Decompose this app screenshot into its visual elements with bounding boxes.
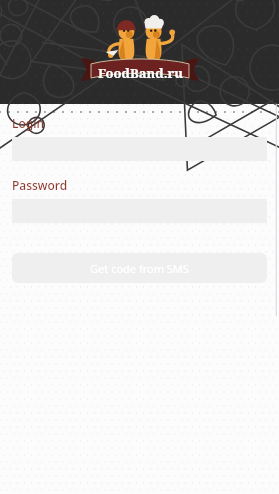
staticText: Login [12, 115, 44, 131]
staticText: FoodBand.ru [98, 64, 183, 82]
staticText: Get code from SMS [90, 261, 189, 276]
staticText: Password [12, 177, 68, 193]
